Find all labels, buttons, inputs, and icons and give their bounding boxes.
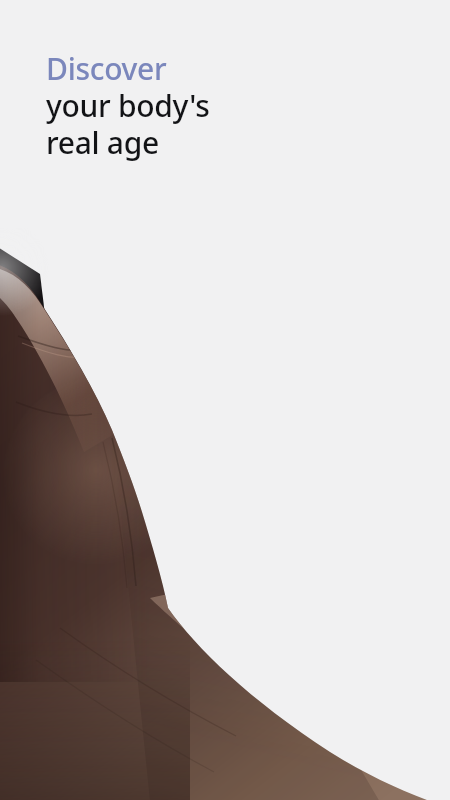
button[interactable] bbox=[0, 0, 450, 800]
